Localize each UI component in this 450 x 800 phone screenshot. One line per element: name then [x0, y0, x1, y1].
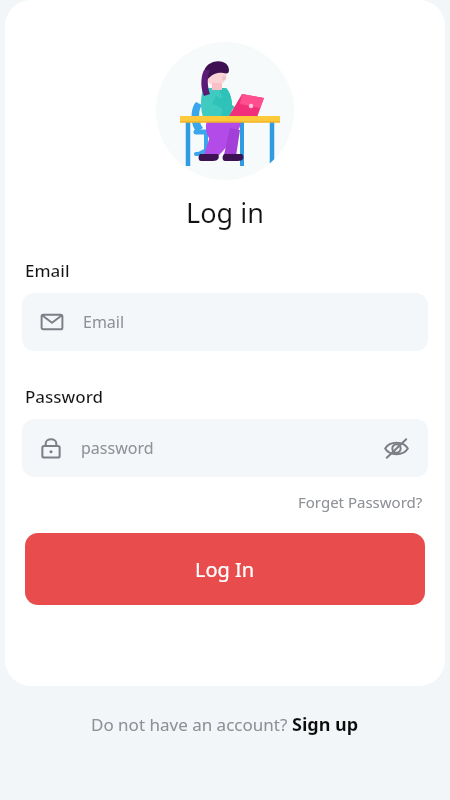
staticText: Log in [186, 194, 264, 231]
button[interactable]: Sign up [292, 712, 359, 737]
staticText: Do not have an account? [91, 713, 292, 736]
staticText: Email [25, 259, 70, 282]
staticText: Password [25, 385, 104, 408]
staticText: Sign up [292, 712, 359, 737]
staticText: Forget Password? [298, 492, 423, 512]
button[interactable]: Show password [381, 433, 411, 463]
button[interactable]: Email [22, 293, 428, 351]
button[interactable]: Forget Password? [296, 489, 425, 515]
staticText: Email [83, 311, 125, 333]
button[interactable]: Log In [25, 533, 425, 605]
staticText: password [81, 437, 154, 459]
button[interactable]: password [22, 419, 428, 477]
staticText: Log In [195, 556, 255, 583]
